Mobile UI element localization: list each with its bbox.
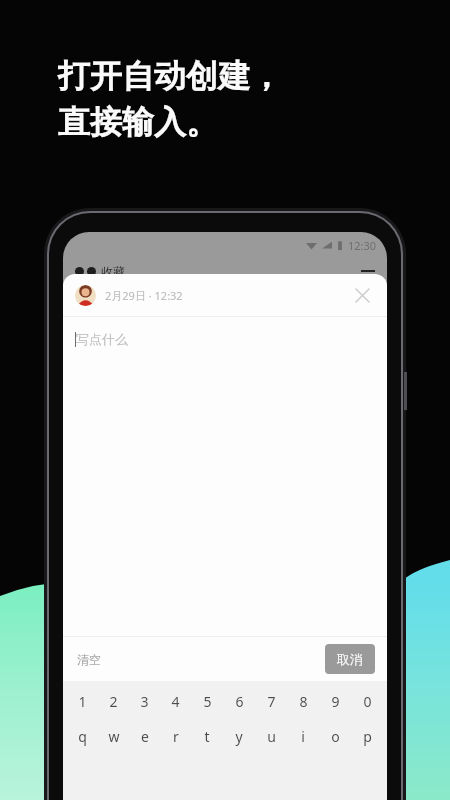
button[interactable]: 取消 [325, 644, 375, 674]
staticText: o [331, 727, 340, 746]
button[interactable]: 清空 [75, 648, 103, 671]
staticText: 5 [203, 692, 212, 711]
staticText: 直接输入。 [58, 102, 218, 142]
button[interactable]: i [287, 725, 319, 747]
staticText: 0 [363, 692, 372, 711]
staticText: e [141, 727, 149, 746]
button[interactable]: q [67, 725, 98, 747]
staticText: 7 [267, 692, 276, 711]
staticText: 取消 [337, 651, 363, 667]
button[interactable]: w [98, 725, 129, 747]
staticText: 收藏 [101, 264, 125, 279]
button[interactable]: 0 [351, 690, 383, 712]
staticText: p [363, 727, 372, 746]
staticText: 9 [331, 692, 340, 711]
button[interactable]: 6 [223, 690, 255, 712]
staticText: i [301, 727, 305, 746]
staticText: 3 [140, 692, 149, 711]
staticText: 写点什么 [76, 331, 128, 347]
button[interactable]: Profile [75, 285, 96, 306]
staticText: t [204, 727, 210, 746]
button[interactable]: Close [349, 282, 375, 308]
staticText: 打开自动创建， [58, 56, 282, 96]
staticText: u [267, 727, 276, 746]
button[interactable]: p [351, 725, 383, 747]
staticText: 1 [78, 692, 87, 711]
staticText: w [108, 727, 120, 746]
button[interactable]: o [319, 725, 351, 747]
button[interactable]: 5 [191, 690, 223, 712]
staticText: 清空 [77, 652, 101, 667]
button[interactable]: 7 [255, 690, 287, 712]
button[interactable]: 1 [67, 690, 98, 712]
button[interactable]: 4 [160, 690, 191, 712]
button[interactable]: t [191, 725, 223, 747]
button[interactable]: 9 [319, 690, 351, 712]
button[interactable]: 3 [129, 690, 160, 712]
staticText: 8 [299, 692, 308, 711]
button[interactable]: e [129, 725, 160, 747]
button[interactable]: 2 [98, 690, 129, 712]
staticText: 2 [109, 692, 118, 711]
staticText: q [78, 727, 87, 746]
button[interactable]: y [223, 725, 255, 747]
staticText: 6 [235, 692, 244, 711]
staticText: r [173, 727, 179, 746]
staticText: y [235, 727, 243, 746]
staticText: 4 [171, 692, 180, 711]
button[interactable]: u [255, 725, 287, 747]
button[interactable]: 8 [287, 690, 319, 712]
staticText: 12:30 [348, 238, 377, 253]
staticText: 2月29日 · 12:32 [105, 288, 183, 303]
button[interactable]: r [160, 725, 191, 747]
